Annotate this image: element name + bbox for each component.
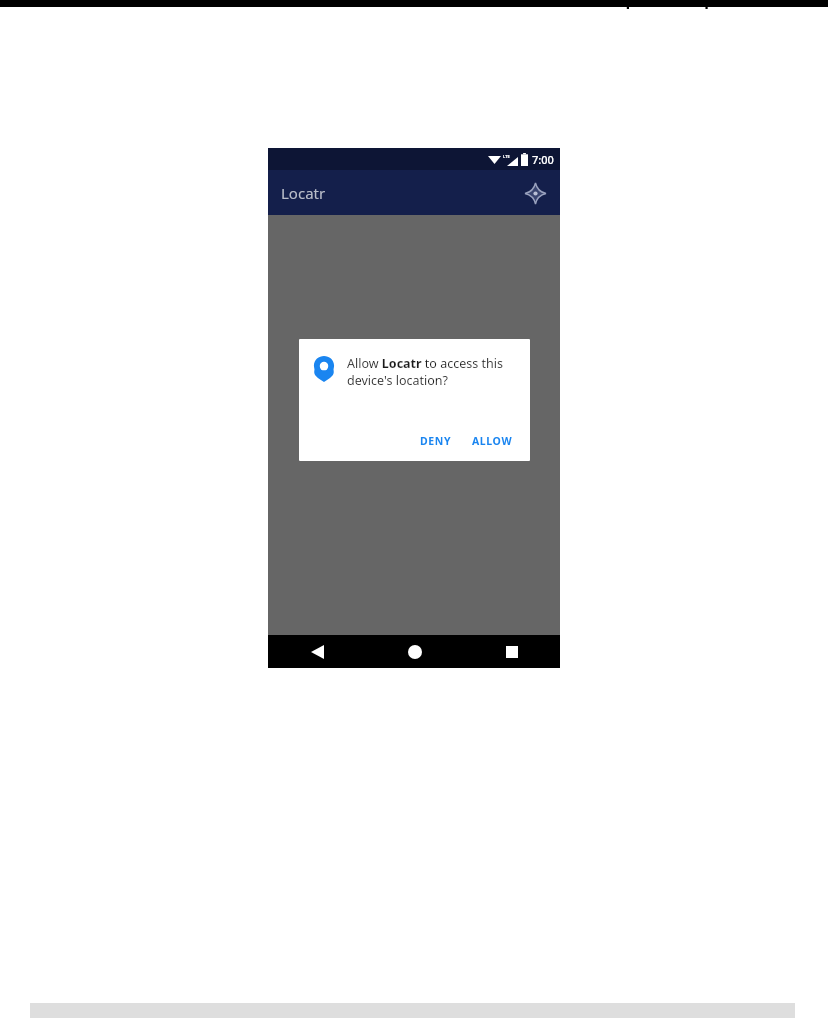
button[interactable]: Recent apps <box>463 635 560 668</box>
button[interactable]: Back <box>268 635 366 668</box>
staticText: Locatr <box>281 183 326 203</box>
staticText: LTE <box>503 154 510 159</box>
button[interactable]: ALLOW <box>465 429 520 453</box>
button[interactable]: Home <box>366 635 463 668</box>
staticText: Allow Locatr to access this device's loc… <box>347 355 516 389</box>
button[interactable]: Find my location <box>520 178 550 208</box>
staticText: 7:00 <box>532 152 554 167</box>
staticText: ALLOW <box>472 434 513 448</box>
button[interactable]: DENY <box>413 429 459 453</box>
staticText: DENY <box>420 434 452 448</box>
